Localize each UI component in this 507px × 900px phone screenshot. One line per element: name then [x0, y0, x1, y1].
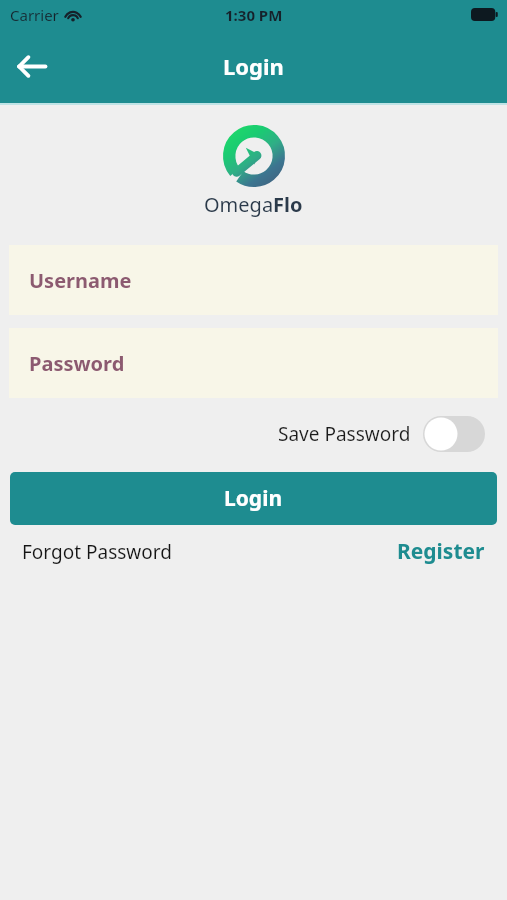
- staticText: OmegaFlo: [204, 191, 303, 218]
- button[interactable]: Password: [9, 328, 498, 398]
- staticText: Save Password: [278, 421, 411, 447]
- staticText: Forgot Password: [22, 539, 172, 565]
- staticText: Username: [29, 267, 132, 294]
- staticText: Carrier: [10, 5, 59, 25]
- button[interactable]: Forgot Password: [22, 535, 172, 569]
- staticText: Register: [397, 537, 485, 566]
- button[interactable]: Register: [397, 533, 485, 570]
- button[interactable]: Username: [9, 245, 498, 315]
- staticText: Login: [224, 484, 283, 513]
- button[interactable]: Save Password toggle: [423, 416, 485, 452]
- button[interactable]: Save Password: [278, 412, 485, 456]
- button[interactable]: Back: [8, 43, 54, 89]
- staticText: Password: [29, 350, 125, 377]
- staticText: 1:30 PM: [225, 5, 283, 25]
- button[interactable]: Login: [10, 472, 497, 525]
- staticText: Login: [223, 51, 284, 81]
